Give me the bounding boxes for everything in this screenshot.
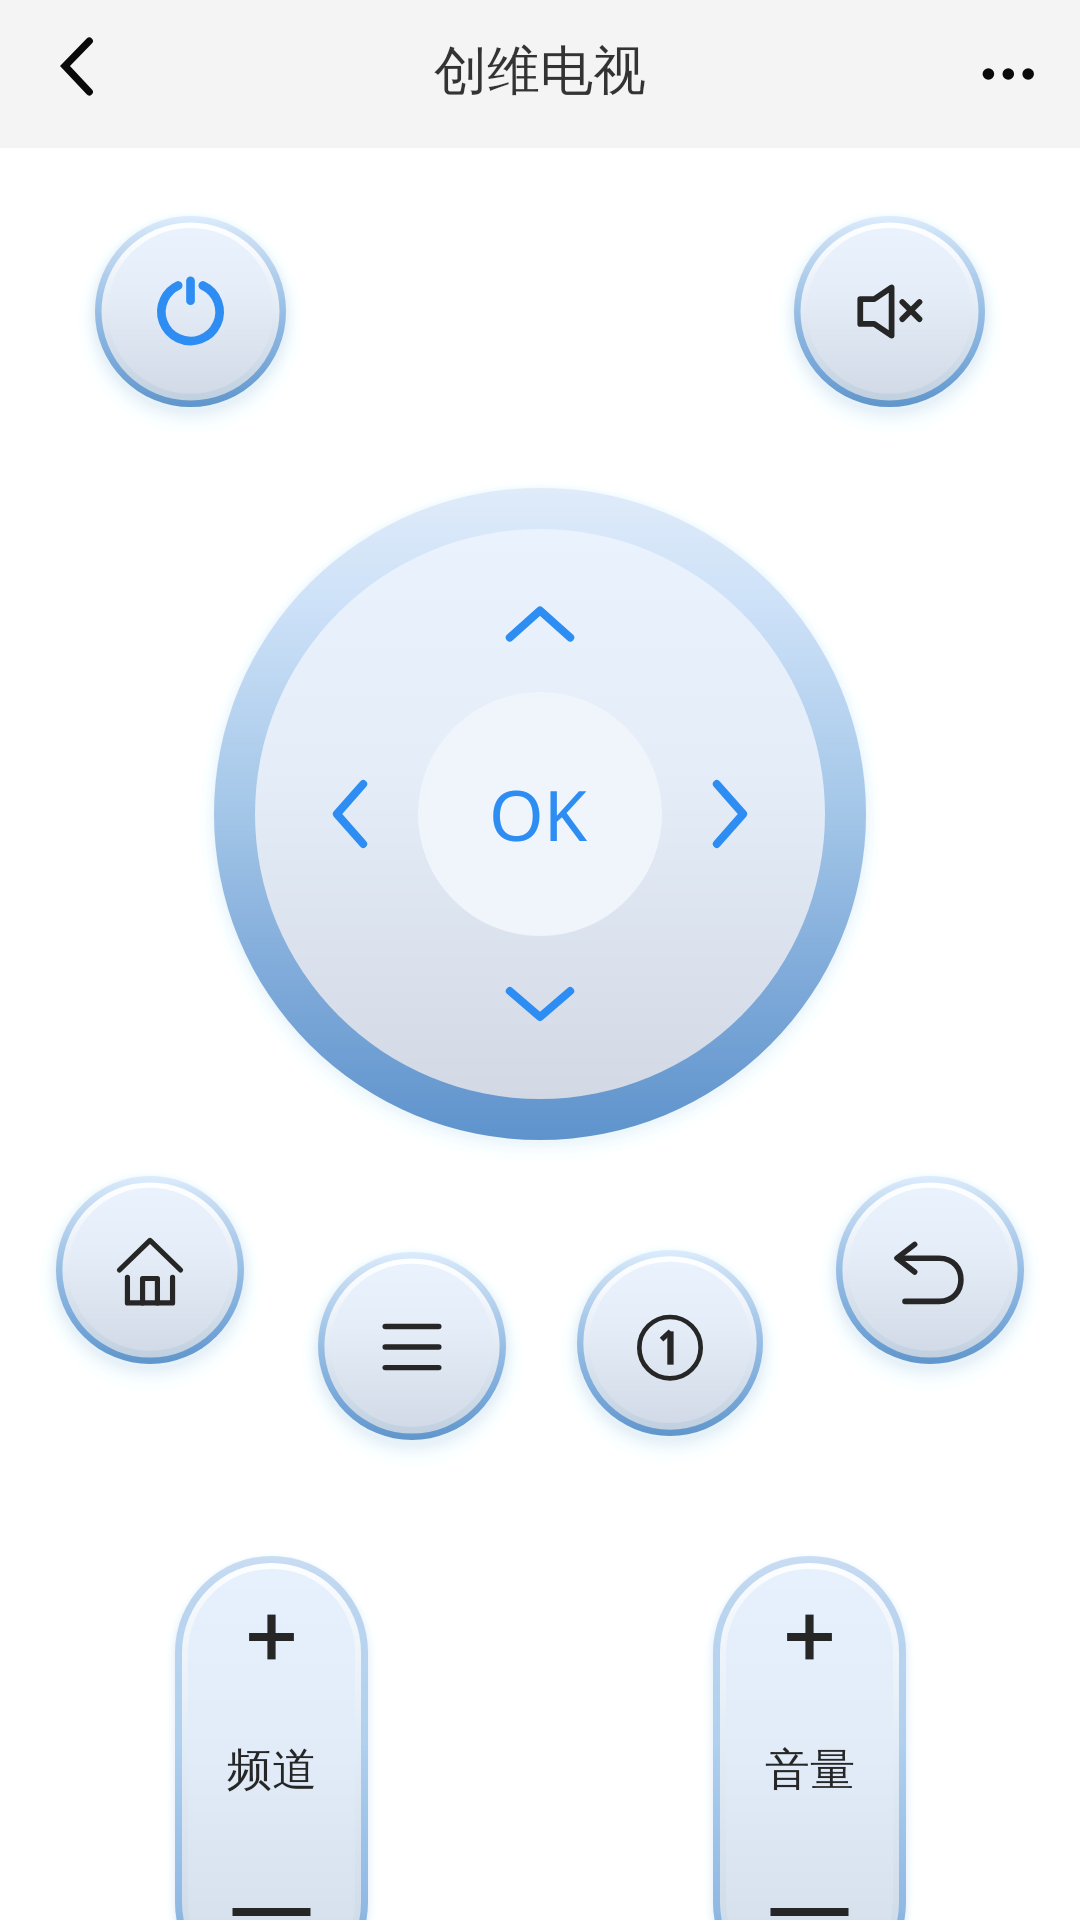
button[interactable]: 音量 - <box>713 1778 906 1920</box>
button[interactable]: 频道 + <box>175 1556 368 1778</box>
button[interactable]: Number one <box>577 1250 763 1436</box>
staticText: 音量 <box>765 1742 855 1799</box>
button[interactable]: OK <box>418 692 662 936</box>
button[interactable]: Back <box>28 24 128 124</box>
staticText: 频道 <box>227 1742 317 1799</box>
button[interactable]: Power <box>95 216 286 407</box>
button[interactable]: 音量 + <box>713 1556 906 1778</box>
staticText: OK <box>489 766 587 861</box>
button[interactable]: Home <box>56 1176 244 1364</box>
button[interactable]: More options <box>964 29 1054 119</box>
staticText: 创维电视 <box>434 38 646 105</box>
button[interactable]: Return <box>836 1176 1024 1364</box>
button[interactable]: Mute <box>794 216 985 407</box>
button[interactable]: 频道 - <box>175 1778 368 1920</box>
button[interactable]: Menu <box>318 1252 506 1440</box>
